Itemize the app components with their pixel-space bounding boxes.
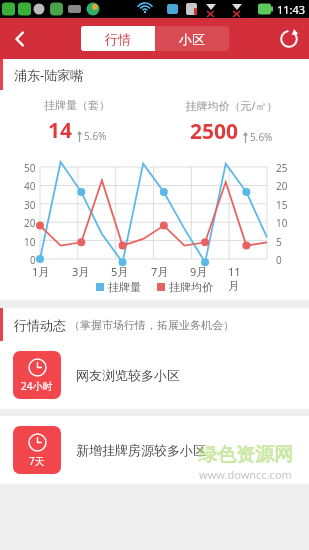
staticText: 25 [276,161,288,175]
staticText: 11月 [228,264,250,293]
staticText: 挂牌量（套） [44,98,110,112]
staticText: 50 [24,161,36,175]
button[interactable]: Back [0,19,40,59]
button[interactable]: 行情动态 [0,308,309,341]
staticText: 0 [30,253,36,267]
staticText: 行情动态 [14,317,66,333]
staticText: 挂牌均价 [169,280,213,294]
staticText: 11:43 [277,2,306,17]
staticText: 20 [276,179,288,193]
button[interactable]: 24小时 [0,341,309,409]
staticText: 9月 [190,264,208,279]
staticText: 挂牌量 [108,280,141,294]
staticText: 网友浏览较多小区 [76,367,180,383]
staticText: 10 [276,216,288,230]
staticText: 5.6% [250,130,273,144]
button[interactable]: 浦东-陆家嘴 [0,59,309,90]
staticText: （掌握市场行情，拓展业务机会） [69,318,234,332]
staticText: 1月 [32,264,50,279]
staticText: 7月 [151,264,169,279]
button[interactable]: 挂牌均价（元/㎡） [154,90,309,153]
button[interactable]: 小区 [155,26,229,51]
staticText: 行情 [105,31,131,47]
staticText: 30 [24,198,36,212]
staticText: 新增挂牌房源较多小区 [76,442,206,458]
staticText: 2500 [190,117,239,146]
staticText: 14 [48,116,73,145]
button[interactable]: 7天 [0,416,309,484]
staticText: 0 [276,253,282,267]
staticText: 挂牌均价（元/㎡） [185,98,278,113]
staticText: 24小时 [21,379,53,393]
button[interactable]: 挂牌量（套） [0,90,154,153]
button[interactable]: 行情 [81,26,155,51]
staticText: 40 [24,179,36,193]
staticText: 15 [276,198,288,212]
staticText: 绿色资源网 [198,443,293,467]
staticText: 7天 [29,454,45,468]
staticText: 小区 [179,31,205,47]
staticText: 浦东-陆家嘴 [14,66,84,84]
staticText: 5.6% [84,129,107,143]
staticText: 3月 [72,264,90,279]
staticText: 20 [24,216,36,230]
staticText: 5月 [111,264,129,279]
staticText: 10 [24,235,36,249]
button[interactable]: Refresh [269,19,309,59]
staticText: 5 [276,235,282,249]
staticText: www.downcc.com [199,467,292,482]
